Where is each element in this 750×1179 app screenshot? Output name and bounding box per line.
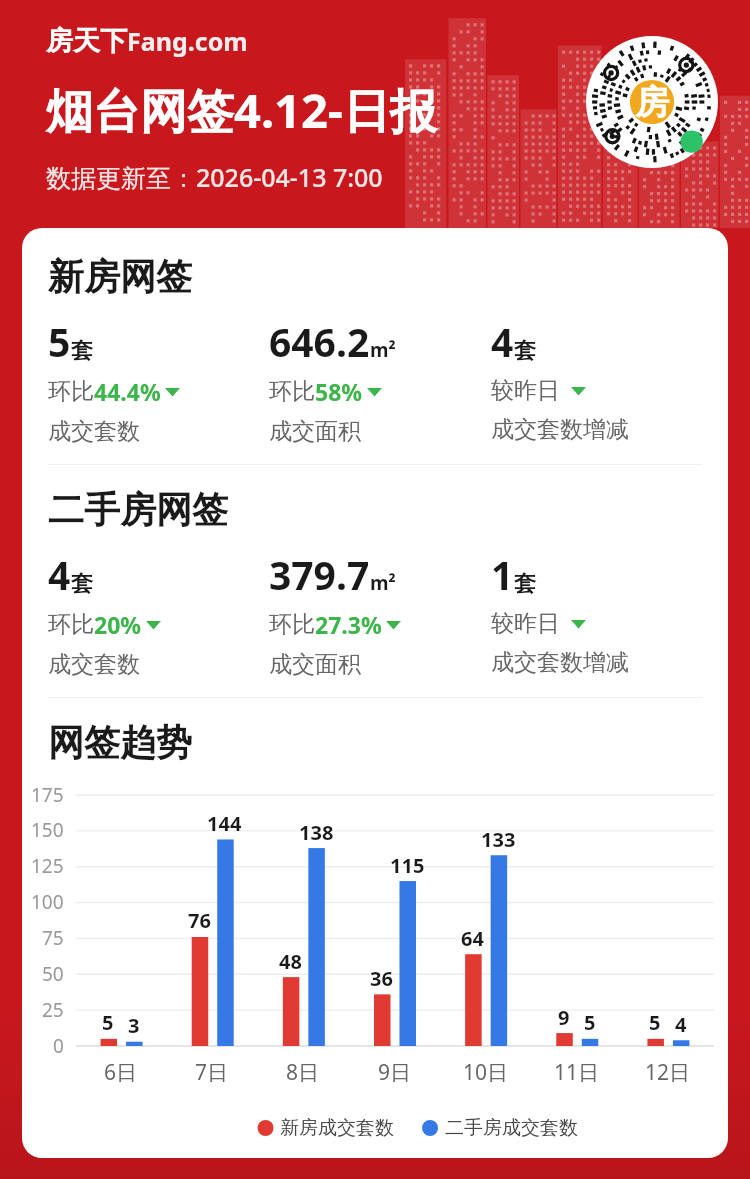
staticText: 12日 bbox=[645, 1058, 691, 1087]
staticText: m² bbox=[370, 570, 396, 596]
staticText: 150 bbox=[31, 817, 64, 843]
staticText: 646.2 bbox=[269, 315, 370, 368]
staticText: 6日 bbox=[104, 1058, 138, 1087]
button[interactable]: 扫描小程序码 bbox=[586, 36, 718, 168]
staticText: 4 bbox=[675, 1011, 687, 1038]
staticText: 环比 bbox=[48, 610, 94, 639]
staticText: 8日 bbox=[286, 1058, 320, 1087]
staticText: 125 bbox=[31, 853, 64, 879]
button[interactable]: 房天下 bbox=[46, 24, 248, 58]
staticText: 4 bbox=[48, 548, 71, 601]
staticText: 成交套数增减 bbox=[491, 415, 629, 444]
staticText: 36 bbox=[370, 965, 393, 992]
button[interactable]: 4 bbox=[48, 548, 269, 679]
staticText: 175 bbox=[31, 782, 64, 808]
staticText: 144 bbox=[207, 810, 242, 837]
staticText: 1 bbox=[491, 548, 514, 601]
staticText: 成交面积 bbox=[269, 417, 361, 446]
staticText: 较昨日 bbox=[491, 376, 560, 405]
staticText: 76 bbox=[188, 907, 211, 934]
staticText: 3 bbox=[128, 1012, 140, 1039]
staticText: 套 bbox=[71, 570, 93, 598]
staticText: 115 bbox=[390, 852, 425, 879]
staticText: 7日 bbox=[195, 1058, 229, 1087]
staticText: 5 bbox=[584, 1009, 596, 1036]
staticText: 133 bbox=[481, 826, 516, 853]
staticText: 套 bbox=[71, 337, 93, 365]
staticText: 二手房网签 bbox=[48, 487, 228, 532]
staticText: 房天下 bbox=[46, 24, 127, 58]
button[interactable]: 379.7 bbox=[269, 548, 491, 679]
staticText: 套 bbox=[514, 570, 536, 598]
staticText: 25 bbox=[42, 997, 64, 1023]
staticText: m² bbox=[370, 337, 396, 363]
staticText: 138 bbox=[299, 819, 334, 846]
staticText: 数据更新至：2026-04-13 7:00 bbox=[46, 160, 383, 194]
staticText: 100 bbox=[31, 889, 64, 915]
staticText: 成交面积 bbox=[269, 650, 361, 679]
staticText: Fang.com bbox=[127, 24, 248, 58]
staticText: 烟台网签4.12-日报 bbox=[46, 78, 437, 142]
staticText: 9 bbox=[558, 1004, 570, 1031]
staticText: 新房成交套数 bbox=[280, 1116, 394, 1140]
staticText: 网签趋势 bbox=[48, 720, 192, 765]
staticText: 房 bbox=[635, 81, 669, 124]
staticText: 5 bbox=[102, 1009, 114, 1036]
staticText: 50 bbox=[42, 961, 64, 987]
staticText: 11日 bbox=[554, 1058, 600, 1087]
staticText: 9日 bbox=[378, 1058, 412, 1087]
staticText: 5 bbox=[649, 1009, 661, 1036]
staticText: 环比 bbox=[269, 377, 315, 406]
staticText: 27.3% bbox=[315, 609, 382, 640]
staticText: 成交套数 bbox=[48, 650, 140, 679]
staticText: 64 bbox=[461, 925, 484, 952]
staticText: 环比 bbox=[48, 377, 94, 406]
button[interactable]: 1 bbox=[491, 548, 702, 677]
staticText: 20% bbox=[94, 609, 142, 640]
staticText: 10日 bbox=[463, 1058, 509, 1087]
staticText: 48 bbox=[279, 948, 302, 975]
staticText: 套 bbox=[514, 337, 536, 365]
staticText: 379.7 bbox=[269, 548, 370, 601]
staticText: 4 bbox=[491, 315, 514, 368]
staticText: 环比 bbox=[269, 610, 315, 639]
staticText: 二手房成交套数 bbox=[445, 1116, 578, 1140]
staticText: 成交套数增减 bbox=[491, 648, 629, 677]
staticText: 0 bbox=[53, 1033, 64, 1059]
staticText: 较昨日 bbox=[491, 609, 560, 638]
staticText: 新房网签 bbox=[48, 254, 192, 299]
staticText: 58% bbox=[315, 376, 363, 407]
staticText: 44.4% bbox=[94, 376, 161, 407]
staticText: 75 bbox=[42, 925, 64, 951]
staticText: 5 bbox=[48, 315, 71, 368]
button[interactable]: 5 bbox=[48, 315, 269, 446]
button[interactable]: 4 bbox=[491, 315, 702, 444]
staticText: 成交套数 bbox=[48, 417, 140, 446]
button[interactable]: 646.2 bbox=[269, 315, 491, 446]
